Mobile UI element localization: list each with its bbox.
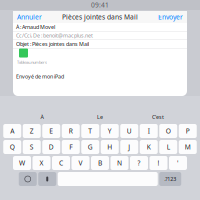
staticText: Y bbox=[108, 127, 112, 135]
staticText: Envoyé de mon iPad bbox=[16, 73, 64, 80]
staticText: ? bbox=[137, 159, 140, 167]
staticText: K bbox=[147, 143, 151, 151]
button[interactable]: F bbox=[62, 140, 80, 154]
staticText: ' bbox=[177, 159, 179, 167]
button[interactable]: N bbox=[110, 156, 128, 170]
staticText: I bbox=[148, 127, 150, 135]
staticText: C'est bbox=[152, 113, 164, 121]
staticText: Q bbox=[10, 143, 15, 151]
button[interactable]: .?123 bbox=[159, 172, 181, 186]
button[interactable]: T bbox=[81, 124, 99, 138]
button[interactable]: Annuler bbox=[13, 13, 42, 21]
button[interactable]: ! bbox=[149, 156, 167, 170]
staticText: L bbox=[167, 143, 170, 151]
staticText: À bbox=[40, 113, 43, 121]
staticText: B bbox=[98, 159, 102, 167]
button[interactable]: E bbox=[42, 124, 60, 138]
staticText: .?123 bbox=[164, 175, 176, 183]
staticText: Objet : Pièces jointes dans Mail bbox=[16, 40, 89, 48]
staticText: Pièces jointes dans Mail bbox=[62, 13, 138, 21]
button[interactable]: O bbox=[159, 124, 177, 138]
button[interactable]: ' bbox=[169, 156, 187, 170]
staticText: Z bbox=[30, 127, 34, 135]
button[interactable]: Q bbox=[3, 140, 21, 154]
button[interactable]: Z bbox=[23, 124, 41, 138]
button[interactable]: G bbox=[81, 140, 99, 154]
staticText: T bbox=[88, 127, 92, 135]
staticText: Envoyer bbox=[158, 13, 183, 21]
staticText: J bbox=[128, 143, 130, 151]
button[interactable]: C bbox=[52, 156, 70, 170]
button[interactable]: X bbox=[32, 156, 50, 170]
staticText: O bbox=[166, 127, 171, 135]
button[interactable]: H bbox=[101, 140, 119, 154]
staticText: S bbox=[30, 143, 34, 151]
staticText: H bbox=[107, 143, 112, 151]
button[interactable]: Envoyer bbox=[158, 13, 187, 21]
button[interactable]: S bbox=[23, 140, 41, 154]
button[interactable]: I bbox=[140, 124, 158, 138]
button[interactable]: B bbox=[91, 156, 109, 170]
button[interactable]: ? bbox=[130, 156, 148, 170]
button[interactable]: W bbox=[13, 156, 31, 170]
staticText: X bbox=[39, 159, 43, 167]
button[interactable]: Emoji bbox=[19, 172, 37, 186]
staticText: N bbox=[117, 159, 122, 167]
staticText: G bbox=[88, 143, 93, 151]
staticText: V bbox=[78, 159, 82, 167]
staticText: 09:41 bbox=[91, 1, 109, 9]
button[interactable]: P bbox=[179, 124, 197, 138]
staticText: P bbox=[186, 127, 190, 135]
button[interactable]: L bbox=[159, 140, 177, 154]
button[interactable]: M bbox=[179, 140, 197, 154]
staticText: R bbox=[69, 127, 73, 135]
staticText: M bbox=[185, 143, 191, 151]
button[interactable]: A bbox=[3, 124, 21, 138]
staticText: C bbox=[59, 159, 63, 167]
button[interactable]: Dictation bbox=[38, 172, 56, 186]
button[interactable]: V bbox=[71, 156, 89, 170]
staticText: Cc/Cci, De : benoit@macplus.net bbox=[16, 32, 93, 39]
button[interactable]: U bbox=[120, 124, 138, 138]
staticText: F bbox=[69, 143, 72, 151]
staticText: Le bbox=[97, 113, 103, 121]
staticText: Annuler bbox=[17, 13, 42, 21]
staticText: D bbox=[49, 143, 54, 151]
button[interactable]: K bbox=[140, 140, 158, 154]
staticText: ! bbox=[157, 159, 159, 167]
staticText: E bbox=[49, 127, 53, 135]
staticText: A bbox=[10, 127, 14, 135]
button[interactable]: Y bbox=[101, 124, 119, 138]
staticText: U bbox=[127, 127, 132, 135]
button[interactable]: R bbox=[62, 124, 80, 138]
staticText: Tableau.numbers bbox=[17, 59, 47, 65]
staticText: W bbox=[19, 159, 25, 167]
staticText: À : Arnaud Movel bbox=[16, 23, 55, 31]
button[interactable]: J bbox=[120, 140, 138, 154]
button[interactable]: D bbox=[42, 140, 60, 154]
